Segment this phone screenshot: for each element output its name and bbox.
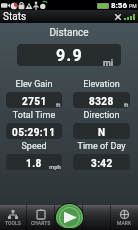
staticText: mph [49,163,61,170]
button[interactable]: 3:42 [73,154,130,170]
staticText: 1.8 [26,158,42,170]
staticText: 05:29:11 [12,127,56,139]
button[interactable]: 2751 [6,92,62,108]
staticText: Speed [6,141,62,152]
staticText: Elevation [73,79,130,90]
staticText: Stats [3,11,27,23]
button[interactable]: 9.9 [17,44,121,66]
staticText: Time of Day [73,141,130,152]
button[interactable]: 8328 [73,92,130,108]
staticText: mi [103,58,114,66]
button[interactable]: Start [55,203,84,228]
staticText: 2751 [22,96,47,108]
staticText: 8:56 [111,1,128,10]
button[interactable]: TOOLS [0,205,26,230]
staticText: 9.9 [56,46,83,65]
staticText: N [98,127,106,139]
staticText: 8328 [89,96,114,108]
button[interactable]: N [73,123,130,139]
staticText: TOOLS [5,220,21,226]
staticText: Total Time [6,110,62,121]
staticText: ft [124,101,129,108]
staticText: CHARTS [31,220,51,226]
button[interactable]: CHARTS [27,205,54,230]
staticText: MARK [117,220,132,226]
staticText: 3:42 [91,158,113,170]
staticText: Direction [73,110,130,121]
staticText: PM [129,3,137,9]
button[interactable]: 05:29:11 [6,123,62,139]
staticText: Distance [0,27,138,39]
button[interactable]: MARK [111,205,138,230]
staticText: Elev Gain [6,79,62,90]
staticText: ft [56,101,61,108]
button[interactable]: 1.8 [6,154,62,170]
